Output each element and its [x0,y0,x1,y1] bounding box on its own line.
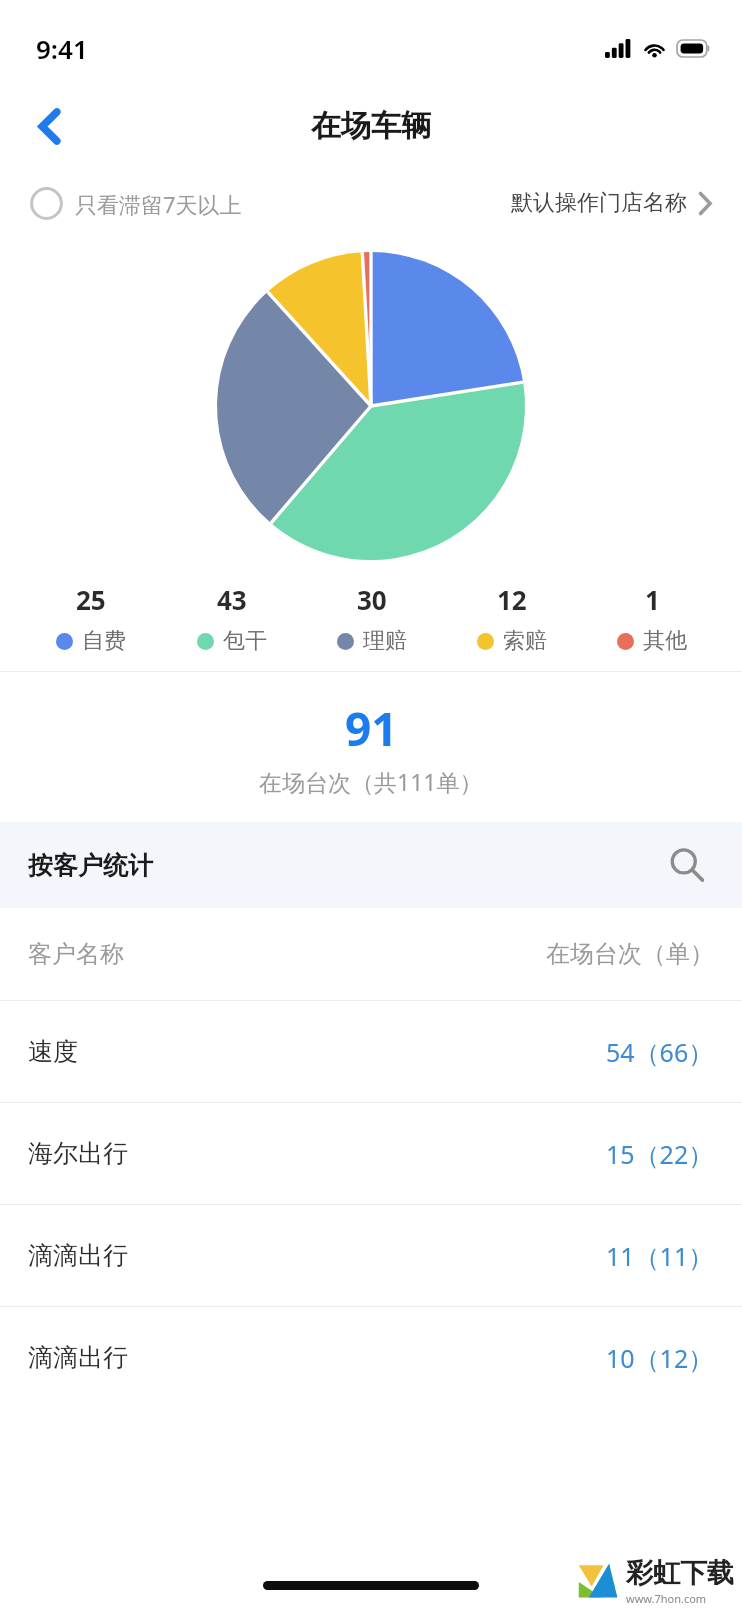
staticText: 12 [497,582,527,617]
staticText: 滴滴出行 [28,1240,128,1271]
staticText: 11（11） [606,1239,714,1273]
staticText: 在场车辆 [311,107,431,145]
staticText: 其他 [643,627,687,655]
staticText: 1 [645,582,660,617]
staticText: 包干 [223,627,267,655]
staticText: 按客户统计 [28,850,153,881]
button[interactable]: 滴滴出行 [0,1205,742,1306]
staticText: 25 [76,582,106,617]
staticText: 滴滴出行 [28,1342,128,1373]
staticText: 91 [345,697,398,760]
staticText: 30 [357,582,387,617]
staticText: 速度 [28,1036,78,1067]
staticText: 54（66） [606,1035,714,1069]
button[interactable]: 只看滞留7天以上 [30,187,242,220]
staticText: 索赔 [503,627,547,655]
button[interactable]: 返回 [18,95,80,157]
staticText: 海尔出行 [28,1138,128,1169]
staticText: 理赔 [363,627,407,655]
button[interactable]: 速度 [0,1001,742,1102]
button[interactable]: 默认操作门店名称 [511,189,712,217]
staticText: 10（12） [606,1341,714,1375]
button[interactable]: 搜索 [660,838,714,892]
staticText: 在场台次（单） [546,939,714,969]
staticText: 9:41 [36,31,88,66]
staticText: 彩虹下载 [626,1556,734,1590]
staticText: 默认操作门店名称 [511,189,687,217]
staticText: 自费 [82,627,126,655]
staticText: 在场台次（共111单） [259,766,483,797]
staticText: 15（22） [606,1137,714,1171]
staticText: 只看滞留7天以上 [75,189,242,219]
staticText: www.7hon.com [626,1591,707,1606]
button[interactable]: 滴滴出行 [0,1307,742,1408]
staticText: 43 [217,582,247,617]
staticText: 客户名称 [28,939,124,969]
button[interactable]: 海尔出行 [0,1103,742,1204]
